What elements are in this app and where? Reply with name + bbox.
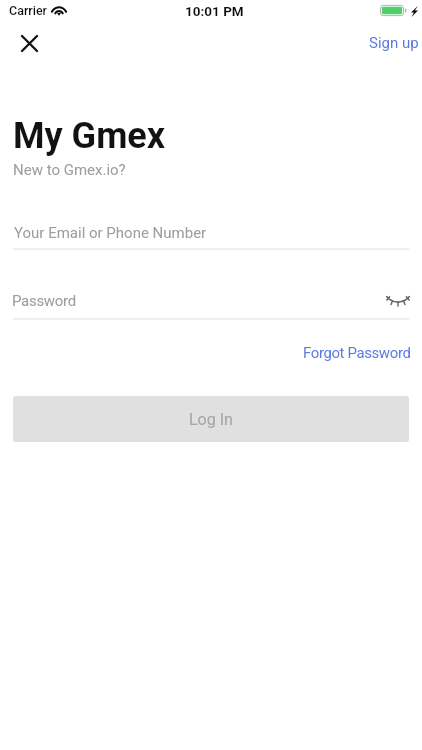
button[interactable]: Show password (380, 287, 416, 315)
staticText: Log In (189, 410, 233, 429)
staticText: Your Email or Phone Number (14, 224, 207, 242)
button[interactable]: Forgot Password (291, 340, 422, 366)
button[interactable]: Close (13, 27, 45, 59)
staticText: Forgot Password (303, 344, 411, 362)
button[interactable]: Log In (13, 396, 409, 442)
staticText: Sign up (369, 34, 419, 52)
staticText: Carrier (9, 3, 48, 18)
button[interactable]: Sign up (359, 29, 422, 57)
staticText: New to Gmex.io? (13, 161, 126, 179)
staticText: My Gmex (13, 115, 166, 157)
staticText: Password (12, 292, 76, 310)
staticText: 10:01 PM (185, 3, 244, 19)
